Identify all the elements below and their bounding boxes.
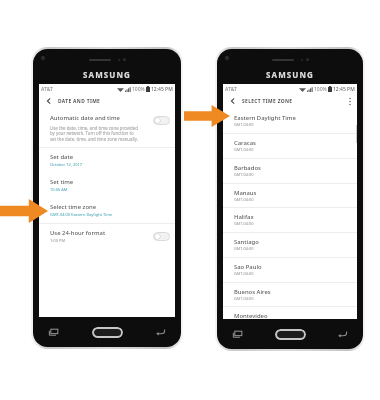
staticText: Use the date, time, and time zone provid… xyxy=(50,125,138,143)
button[interactable]: Manaus xyxy=(223,184,357,207)
button[interactable]: Select time zone xyxy=(39,198,175,223)
staticText: Buenos Aires xyxy=(234,288,271,296)
staticText: 100% xyxy=(314,86,327,93)
staticText: SAMSUNG xyxy=(83,69,131,80)
button[interactable]: Toggle off xyxy=(153,232,170,241)
button[interactable]: Sao Paulo xyxy=(223,258,357,282)
staticText: GMT-04:00 xyxy=(234,296,254,301)
staticText: Sao Paulo xyxy=(234,263,262,271)
staticText: GMT-04:00 xyxy=(234,122,254,127)
staticText: Use 24-hour format xyxy=(50,229,106,237)
staticText: 10:06 AM xyxy=(50,187,68,192)
button[interactable]: DATE AND TIME xyxy=(45,94,175,108)
staticText: SELECT TIME ZONE xyxy=(242,98,293,105)
button[interactable]: Toggle off xyxy=(153,116,170,125)
button[interactable]: Caracas xyxy=(223,134,357,158)
button[interactable]: Montevideo xyxy=(223,307,357,319)
staticText: SAMSUNG xyxy=(266,69,314,80)
staticText: Manaus xyxy=(234,189,257,197)
staticText: Santiago xyxy=(234,238,259,246)
staticText: GMT-04:00 xyxy=(234,197,254,202)
staticText: Eastern Daylight Time xyxy=(234,114,296,122)
button[interactable]: Set date xyxy=(39,148,175,173)
staticText: Halifax xyxy=(234,213,254,221)
staticText: 1:00 PM xyxy=(50,238,66,243)
button[interactable]: More options xyxy=(347,97,353,106)
button[interactable]: Back xyxy=(229,97,237,105)
staticText: October 12, 2017 xyxy=(50,162,83,167)
staticText: Barbados xyxy=(234,164,261,172)
button[interactable]: Recents xyxy=(233,330,242,338)
staticText: GMT-04:00 xyxy=(234,147,254,152)
staticText: Caracas xyxy=(234,139,256,147)
button[interactable]: Santiago xyxy=(223,233,357,257)
staticText: Select time zone xyxy=(50,203,97,211)
staticText: AT&T xyxy=(225,86,237,93)
staticText: GMT-04:00 xyxy=(234,246,254,251)
staticText: Set date xyxy=(50,153,74,161)
staticText: GMT-04:00 xyxy=(234,221,254,226)
button[interactable]: Eastern Daylight Time xyxy=(223,108,357,133)
staticText: 12:45 PM xyxy=(333,86,355,93)
staticText: Montevideo xyxy=(234,312,268,319)
button[interactable]: Back xyxy=(338,330,347,338)
button[interactable]: Barbados xyxy=(223,159,357,183)
staticText: AT&T xyxy=(41,86,53,93)
staticText: 100% xyxy=(132,86,145,93)
button[interactable]: Recents xyxy=(49,328,58,336)
button[interactable]: Use 24-hour format xyxy=(39,224,175,248)
button[interactable]: Set time xyxy=(39,173,175,198)
button[interactable]: Back xyxy=(156,328,165,336)
button[interactable]: Buenos Aires xyxy=(223,283,357,306)
button[interactable]: Halifax xyxy=(223,208,357,232)
button[interactable]: Home xyxy=(92,327,123,338)
staticText: Set time xyxy=(50,178,74,186)
staticText: DATE AND TIME xyxy=(58,98,101,105)
button[interactable]: Automatic date and time xyxy=(39,108,175,147)
button[interactable]: Home xyxy=(275,329,306,340)
staticText: Automatic date and time xyxy=(50,114,120,122)
staticText: GMT-04:00 xyxy=(234,172,254,177)
staticText: GMT-04:00 Eastern Daylight Time xyxy=(50,212,113,217)
staticText: 12:45 PM xyxy=(151,86,173,93)
staticText: GMT-04:00 xyxy=(234,271,254,276)
